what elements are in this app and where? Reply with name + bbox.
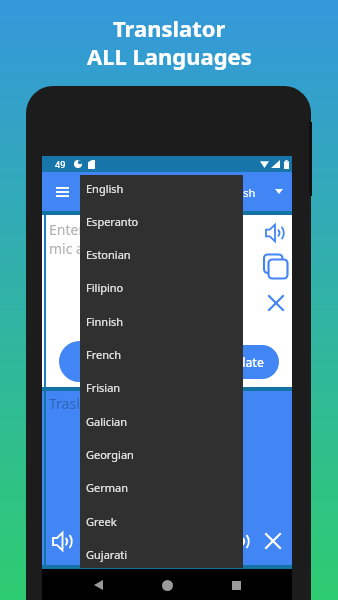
staticText: Translator: [113, 13, 226, 43]
staticText: Translate: [211, 354, 264, 370]
button[interactable]: Translate: [196, 345, 279, 379]
button[interactable]: Copy text: [260, 251, 290, 281]
button[interactable]: Listen to translation: [47, 526, 77, 556]
staticText: English: [86, 181, 124, 196]
button[interactable]: Greek: [80, 505, 243, 538]
button[interactable]: Estonian: [80, 238, 243, 271]
button[interactable]: Galician: [80, 405, 243, 438]
button[interactable]: Speak with microphone: [59, 341, 100, 382]
staticText: French: [86, 347, 122, 362]
button[interactable]: English: [214, 178, 287, 205]
staticText: German: [86, 480, 129, 495]
staticText: Esperanto: [86, 214, 139, 229]
staticText: Georgian: [86, 447, 134, 462]
button[interactable]: Open navigation menu: [48, 178, 76, 206]
button[interactable]: Gujarati: [80, 538, 243, 571]
staticText: Enter text or press mic then mic and spe…: [49, 220, 231, 258]
staticText: 49: [55, 158, 66, 170]
button[interactable]: Finnish: [80, 305, 243, 338]
button[interactable]: Clear translation: [258, 526, 288, 556]
button[interactable]: Back: [85, 572, 111, 598]
staticText: Galician: [86, 414, 127, 429]
button[interactable]: Georgian: [80, 438, 243, 471]
staticText: Greek: [86, 514, 117, 529]
button[interactable]: French: [80, 338, 243, 371]
button[interactable]: Clear text: [261, 288, 291, 318]
staticText: English: [218, 185, 256, 200]
button[interactable]: German: [80, 471, 243, 504]
button[interactable]: Recent apps: [223, 572, 249, 598]
staticText: Finnish: [86, 314, 124, 329]
staticText: ALL Languages: [87, 41, 252, 71]
button[interactable]: Frisian: [80, 371, 243, 404]
staticText: Estonian: [86, 247, 131, 262]
staticText: Traslation: [49, 394, 114, 413]
staticText: Filipino: [86, 280, 124, 295]
button[interactable]: Listen: [259, 217, 291, 249]
button[interactable]: Copy translation: [224, 526, 254, 556]
staticText: Frisian: [86, 380, 121, 395]
staticText: Gujarati: [86, 547, 128, 562]
button[interactable]: Filipino: [80, 271, 243, 304]
button[interactable]: Esperanto: [80, 205, 243, 238]
button[interactable]: English: [80, 172, 243, 205]
button[interactable]: Home: [154, 572, 180, 598]
